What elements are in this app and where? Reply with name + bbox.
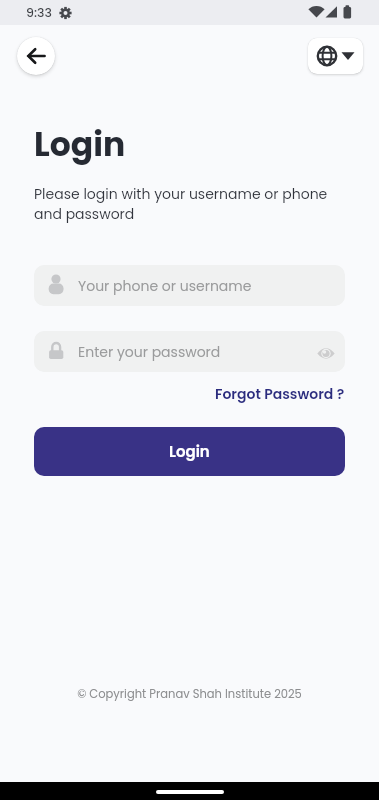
staticText: Login: [34, 121, 126, 167]
button[interactable]: Enter your password: [34, 331, 345, 372]
staticText: Please login with your username or phone…: [34, 184, 328, 224]
button[interactable]: [308, 38, 363, 74]
staticText: 9:33: [26, 4, 52, 21]
button[interactable]: Forgot Password ?: [215, 384, 345, 404]
button[interactable]: [314, 340, 338, 364]
button[interactable]: Login: [34, 427, 345, 476]
button[interactable]: Your phone or username: [34, 265, 345, 306]
staticText: Login: [169, 441, 210, 462]
staticText: Your phone or username: [78, 276, 252, 296]
staticText: © Copyright Pranav Shah Institute 2025: [0, 686, 379, 702]
staticText: Enter your password: [78, 342, 221, 362]
button[interactable]: [17, 37, 55, 75]
